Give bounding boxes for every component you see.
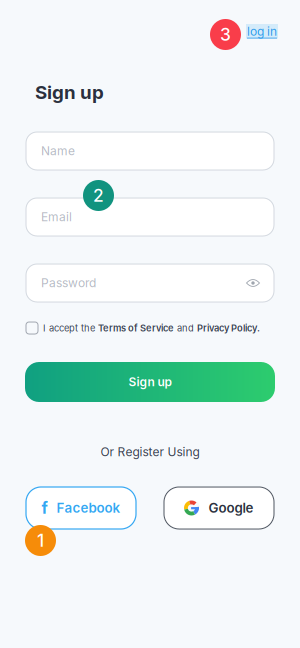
staticText: Terms of Service [98, 322, 174, 334]
button[interactable]: f [26, 487, 136, 529]
button[interactable]: log in [246, 24, 278, 38]
staticText: . [257, 322, 260, 334]
staticText: Name [41, 144, 75, 158]
staticText: log in [247, 24, 277, 38]
staticText: Google [208, 500, 253, 516]
staticText: Privacy Policy [197, 322, 257, 334]
staticText: Password [41, 276, 96, 290]
button[interactable]: Sign up [25, 362, 275, 402]
staticText: 3 [220, 24, 231, 45]
staticText: I accept the [43, 322, 98, 334]
staticText: Or Register Using [100, 445, 199, 459]
button[interactable]: Google [164, 487, 274, 529]
staticText: Email [41, 210, 72, 224]
staticText: f [41, 498, 47, 518]
staticText: Sign up [35, 81, 104, 104]
staticText: 2 [93, 185, 104, 206]
staticText: 1 [37, 530, 44, 551]
staticText: Facebook [56, 500, 120, 516]
staticText: and [174, 322, 197, 334]
staticText: Sign up [128, 375, 171, 389]
button[interactable]: I accept the [26, 321, 274, 335]
